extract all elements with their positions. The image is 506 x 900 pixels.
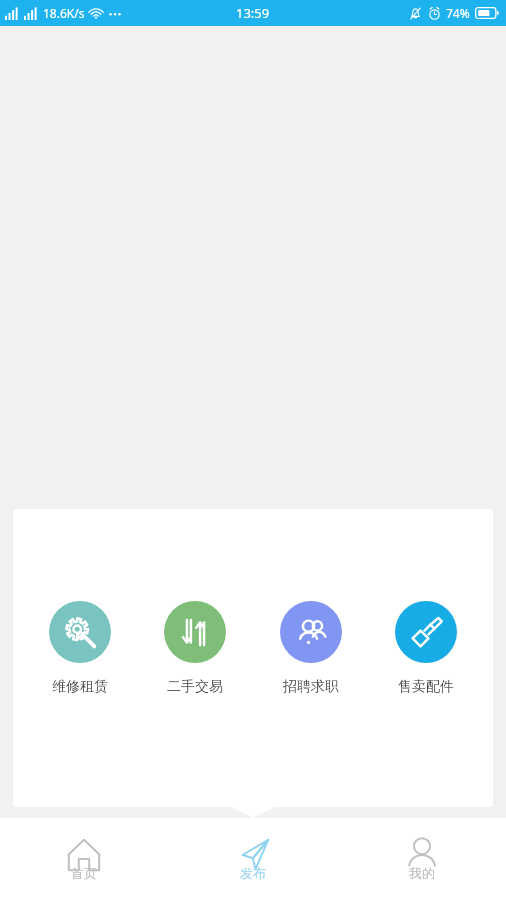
button[interactable]: Profile (337, 818, 506, 900)
staticText: 二手交易 (167, 678, 223, 696)
button[interactable]: Home (0, 818, 168, 900)
staticText: 维修租赁 (52, 678, 108, 696)
staticText: 13:59 (236, 4, 270, 22)
button[interactable]: 售卖配件 (378, 601, 474, 696)
staticText: 招聘求职 (283, 678, 339, 696)
button[interactable]: 招聘求职 (263, 601, 359, 696)
staticText: 售卖配件 (398, 678, 454, 696)
staticText: 18.6K/s (43, 5, 85, 21)
staticText: 首页 (71, 865, 97, 881)
staticText: 我的 (409, 865, 435, 881)
button[interactable]: Publish (168, 818, 337, 900)
button[interactable]: 二手交易 (147, 601, 243, 696)
staticText: 74% (446, 5, 470, 21)
staticText: 发布 (240, 865, 266, 881)
button[interactable]: 维修租赁 (32, 601, 128, 696)
